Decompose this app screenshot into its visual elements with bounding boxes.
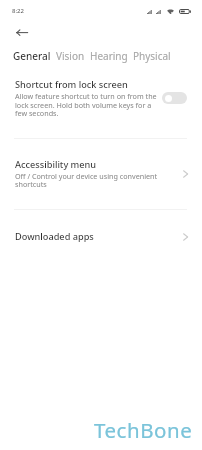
button[interactable]: Vision [56,48,90,64]
button[interactable]: General [13,48,56,64]
staticText: Off / Control your device using convenie… [15,171,158,181]
staticText: few seconds. [15,108,59,118]
staticText: Downloaded apps [15,230,94,243]
staticText: shortcuts [15,179,47,189]
button[interactable] [0,224,202,250]
button[interactable] [0,152,202,196]
staticText: Accessibility menu [15,158,97,171]
staticText: Shortcut from lock screen [15,78,128,91]
button[interactable]: Shortcut from lock screen toggle [162,92,187,104]
staticText: Allow feature shortcut to turn on from t… [15,91,157,101]
staticText: lock screen. Hold both volume keys for a [15,100,152,110]
staticText: General [13,49,51,63]
staticText: Vision [56,49,85,63]
staticText: Hearing [90,49,128,63]
staticText: Physical [133,49,171,63]
staticText: 8:22 [12,7,24,15]
button[interactable]: Back [11,22,32,43]
button[interactable]: Hearing [90,48,133,64]
staticText: TechBone [94,416,193,444]
button[interactable] [0,74,202,122]
button[interactable]: Physical [133,48,176,64]
